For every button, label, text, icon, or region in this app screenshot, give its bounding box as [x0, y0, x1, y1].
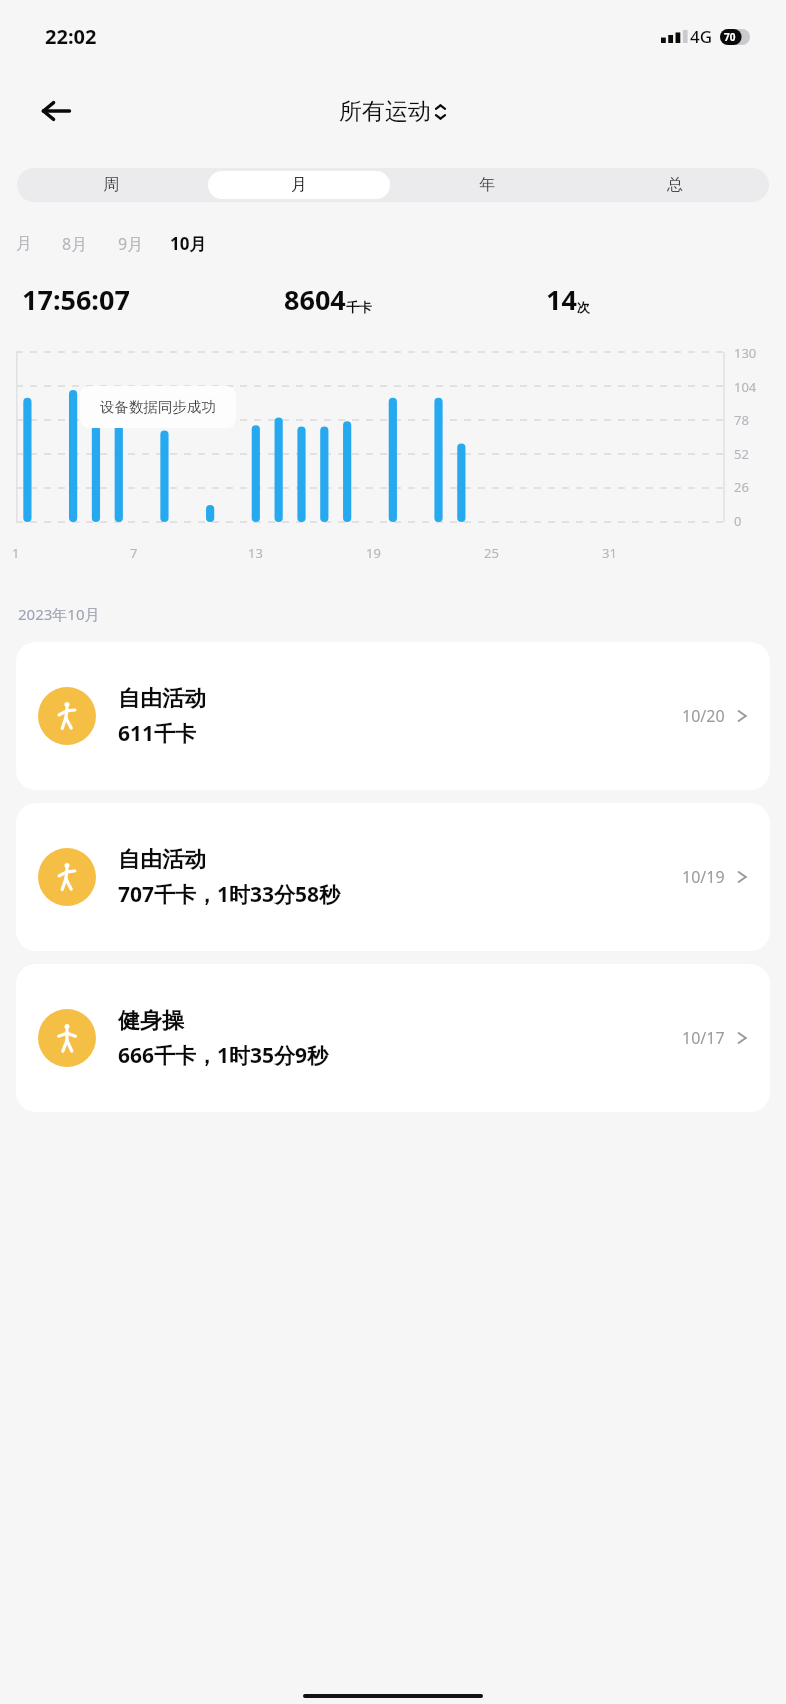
- staticText: 130: [734, 344, 757, 362]
- staticText: 666千卡，1时35分9秒: [118, 1041, 329, 1070]
- staticText: 10/20: [682, 705, 725, 727]
- staticText: 26: [734, 478, 749, 496]
- staticText: 月: [291, 175, 307, 195]
- button[interactable]: 健身操: [16, 964, 770, 1112]
- staticText: 9月: [118, 233, 144, 255]
- button[interactable]: 年: [396, 171, 578, 199]
- staticText: 千卡: [346, 299, 372, 315]
- button[interactable]: 月: [208, 171, 390, 199]
- staticText: 14: [546, 281, 577, 318]
- button[interactable]: 总: [584, 171, 766, 199]
- staticText: 年: [479, 175, 495, 195]
- staticText: 611千卡: [118, 719, 197, 748]
- button[interactable]: 自由活动: [16, 803, 770, 951]
- staticText: 10月: [170, 232, 207, 255]
- staticText: 次: [577, 299, 590, 315]
- staticText: 17:56:07: [22, 281, 130, 318]
- staticText: 19: [366, 544, 381, 562]
- staticText: 健身操: [118, 1007, 184, 1035]
- staticText: 10/19: [682, 866, 725, 888]
- button[interactable]: 所有运动: [339, 97, 447, 126]
- staticText: 13: [248, 544, 263, 562]
- staticText: 25: [484, 544, 499, 562]
- staticText: 10/17: [682, 1027, 725, 1049]
- staticText: 70: [724, 30, 736, 44]
- staticText: 8月: [62, 233, 88, 255]
- staticText: 31: [602, 544, 617, 562]
- staticText: 2023年10月: [18, 604, 100, 624]
- staticText: 所有运动: [339, 97, 431, 126]
- button[interactable]: Back: [30, 85, 82, 137]
- staticText: 月: [16, 234, 32, 254]
- staticText: 22:02: [45, 23, 97, 50]
- staticText: 自由活动: [118, 846, 206, 874]
- staticText: 78: [734, 411, 749, 429]
- staticText: 总: [667, 175, 683, 195]
- staticText: 周: [103, 175, 119, 195]
- staticText: 104: [734, 378, 757, 396]
- staticText: 707千卡，1时33分58秒: [118, 880, 341, 909]
- staticText: 1: [12, 544, 20, 562]
- staticText: 4G: [690, 25, 713, 48]
- staticText: 7: [130, 544, 138, 562]
- staticText: 52: [734, 445, 749, 463]
- staticText: 8604: [284, 281, 346, 318]
- button[interactable]: 周: [20, 171, 202, 199]
- staticText: 设备数据同步成功: [100, 398, 216, 416]
- button[interactable]: 自由活动: [16, 642, 770, 790]
- staticText: 0: [734, 512, 742, 530]
- staticText: 自由活动: [118, 685, 206, 713]
